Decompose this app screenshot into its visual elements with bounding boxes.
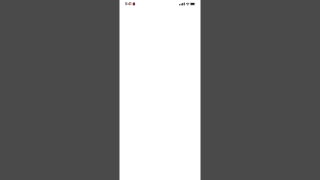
staticText: 9:41 (125, 2, 132, 6)
